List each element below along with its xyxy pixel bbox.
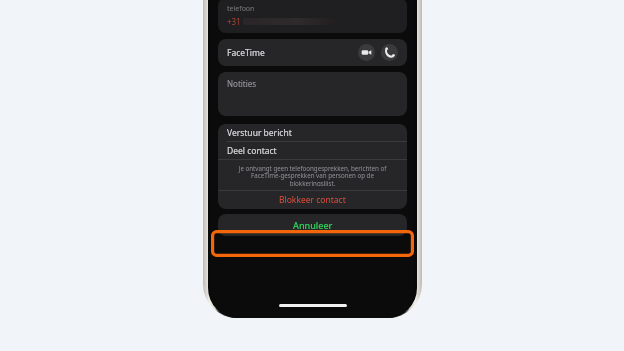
button[interactable]: Verstuur bericht [218,124,407,141]
staticText: Deel contact [227,145,277,157]
staticText: Notities [227,78,257,89]
button[interactable]: FaceTime audio [381,44,398,61]
button[interactable]: Notities [218,72,407,116]
staticText: Verstuur bericht [227,127,292,139]
button[interactable]: Deel contact [218,142,407,159]
staticText: Blokkeer contact [279,194,346,206]
button[interactable]: FaceTime video [358,44,375,61]
button[interactable]: telefoon [218,0,407,33]
staticText: +31 [227,16,241,27]
staticText: telefoon [227,4,255,14]
staticText: Je ontvangt geen telefoongesprekken, ber… [232,164,393,186]
button[interactable]: Blokkeer contact [218,191,407,209]
staticText: Annuleer [293,219,333,231]
button[interactable]: Annuleer [218,214,407,236]
staticText: FaceTime [227,47,265,59]
